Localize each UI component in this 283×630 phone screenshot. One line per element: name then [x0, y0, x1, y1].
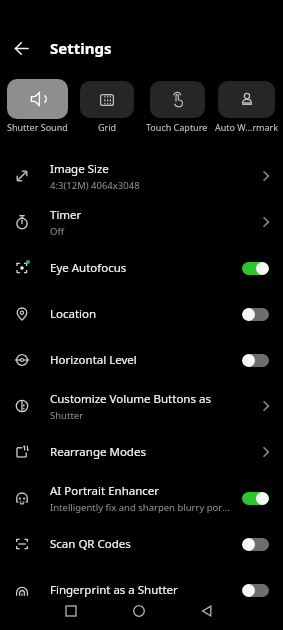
staticText: Rearrange Modes	[50, 444, 146, 460]
staticText: Settings	[50, 38, 112, 58]
staticText: AI Portrait Enhancer	[50, 483, 160, 499]
button[interactable]	[0, 36, 44, 60]
button[interactable]: AI Portrait Enhancer	[0, 475, 283, 521]
button[interactable]	[242, 538, 269, 551]
staticText: Scan QR Codes	[50, 536, 131, 552]
button[interactable]: Touch Capture	[142, 79, 212, 133]
button[interactable]	[173, 597, 241, 630]
button[interactable]	[242, 262, 269, 275]
staticText: Shutter Sound	[7, 121, 68, 133]
button[interactable]: Horizontal Level	[0, 337, 283, 383]
button[interactable]	[242, 354, 269, 367]
button[interactable]: Eye Autofocus	[0, 245, 283, 291]
button[interactable]: Rearrange Modes	[0, 429, 283, 475]
staticText: Intelligently fix and sharpen blurry por…	[50, 501, 230, 514]
button[interactable]: Grid	[72, 79, 142, 133]
button[interactable]: Timer	[0, 199, 283, 245]
staticText: Fingerprint as a Shutter	[50, 582, 178, 598]
staticText: Touch Capture	[146, 121, 208, 133]
staticText: Timer	[50, 207, 82, 223]
button[interactable]: Location	[0, 291, 283, 337]
staticText: Off	[50, 225, 64, 238]
button[interactable]: Image Size	[0, 153, 283, 199]
button[interactable]: Auto W…rmark	[212, 79, 281, 133]
staticText: Customize Volume Buttons as	[50, 391, 211, 407]
staticText: Shutter	[50, 409, 84, 422]
button[interactable]	[242, 492, 269, 505]
button[interactable]	[242, 584, 269, 597]
button[interactable]	[242, 308, 269, 321]
button[interactable]: Scan QR Codes	[0, 521, 283, 567]
button[interactable]	[105, 597, 173, 630]
staticText: Image Size	[50, 161, 109, 177]
button[interactable]	[37, 597, 105, 630]
staticText: Grid	[98, 121, 117, 133]
button[interactable]: Customize Volume Buttons as	[0, 383, 283, 429]
staticText: Eye Autofocus	[50, 260, 127, 276]
staticText: Auto W…rmark	[215, 121, 279, 133]
staticText: 4:3(12M) 4064x3048	[50, 179, 140, 192]
button[interactable]: Fingerprint as a Shutter	[0, 567, 283, 613]
staticText: Location	[50, 306, 97, 322]
button[interactable]: Shutter Sound	[2, 79, 72, 133]
staticText: Horizontal Level	[50, 352, 137, 368]
